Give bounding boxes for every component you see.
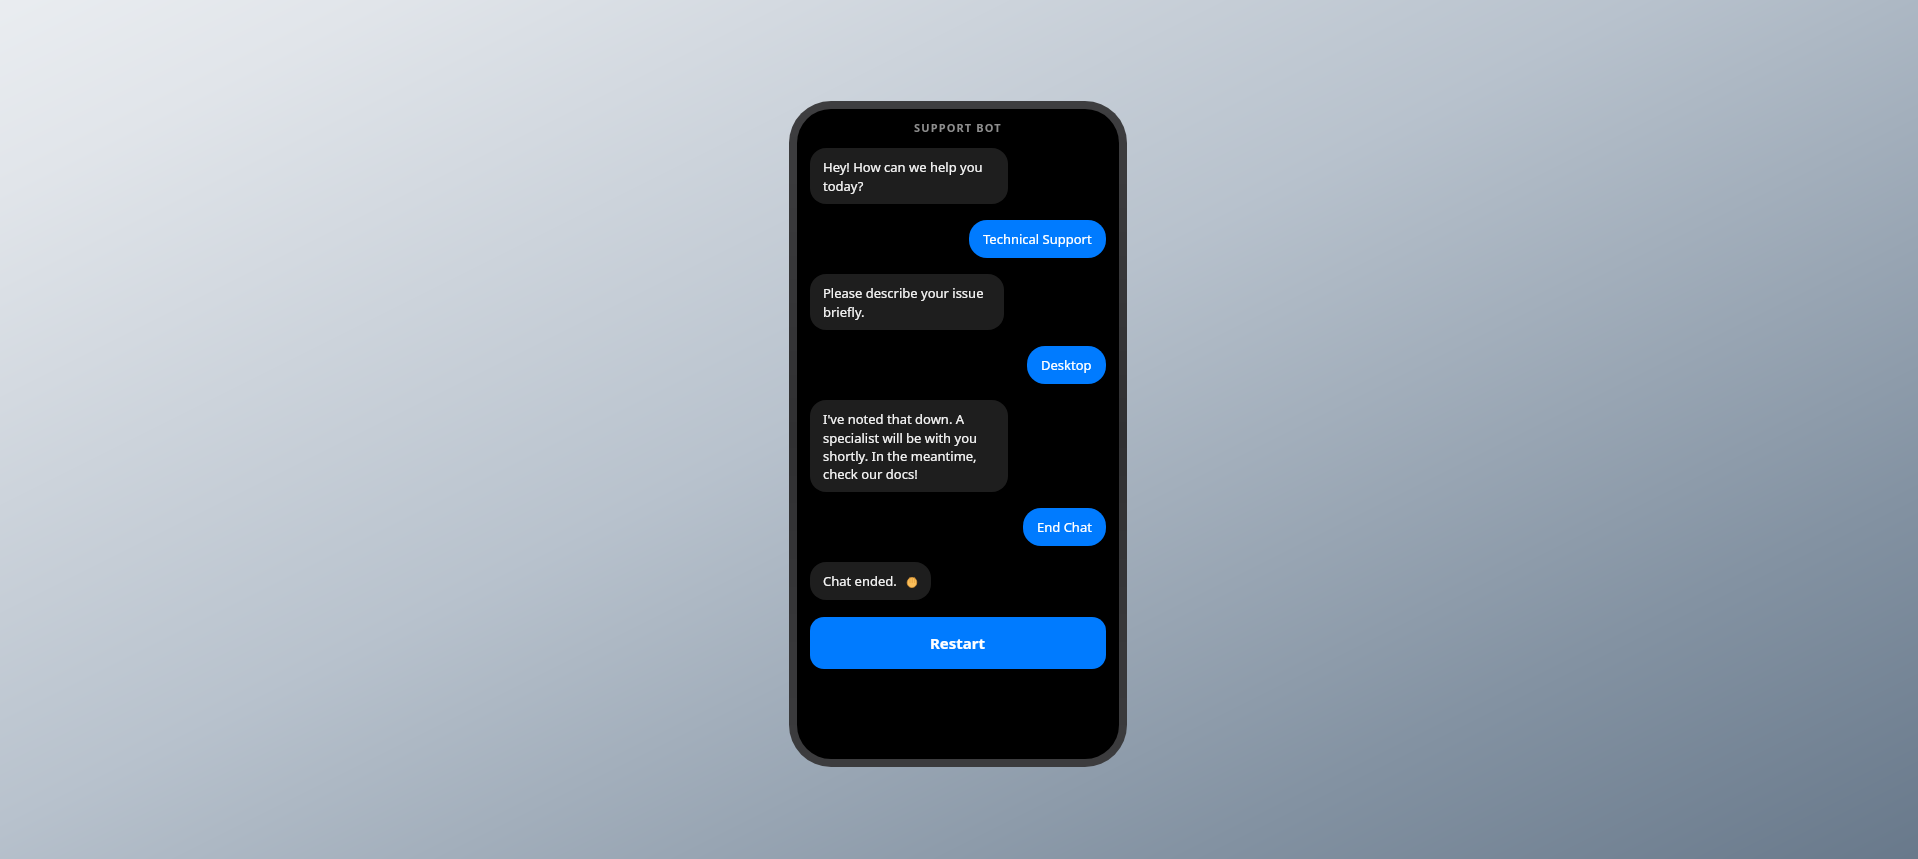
staticText: Please describe your issue briefly. bbox=[823, 284, 991, 320]
button[interactable]: Chat ended. bbox=[810, 562, 931, 600]
button[interactable]: I've noted that down. A specialist will … bbox=[810, 400, 1008, 492]
button[interactable]: End Chat bbox=[1023, 508, 1106, 546]
staticText: Hey! How can we help you today? bbox=[823, 158, 995, 194]
staticText: I've noted that down. A specialist will … bbox=[823, 410, 995, 482]
staticText: Chat ended. bbox=[823, 572, 897, 590]
button[interactable]: Hey! How can we help you today? bbox=[810, 148, 1008, 204]
staticText: Restart bbox=[930, 633, 986, 653]
staticText: Desktop bbox=[1041, 356, 1092, 374]
staticText: SUPPORT BOT bbox=[914, 120, 1002, 135]
button[interactable]: Technical Support bbox=[969, 220, 1106, 258]
button[interactable]: Desktop bbox=[1027, 346, 1106, 384]
staticText: Technical Support bbox=[983, 230, 1092, 248]
button[interactable]: Restart bbox=[810, 617, 1106, 669]
other: Waving hand bbox=[905, 575, 918, 588]
staticText: End Chat bbox=[1037, 518, 1092, 536]
button[interactable]: Please describe your issue briefly. bbox=[810, 274, 1004, 330]
